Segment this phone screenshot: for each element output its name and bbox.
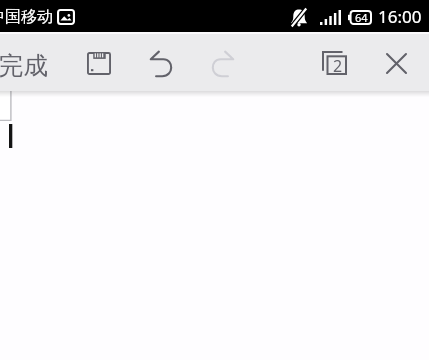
button[interactable]: Redo: [205, 44, 243, 82]
button[interactable]: Close: [377, 44, 415, 82]
staticText: 64: [355, 10, 368, 25]
button[interactable]: Undo: [141, 44, 179, 82]
button[interactable]: 完成: [0, 50, 51, 81]
button[interactable]: Tabs: [315, 44, 353, 82]
staticText: 2: [333, 55, 343, 77]
button[interactable]: Save: [80, 44, 118, 82]
staticText: 16:00: [378, 5, 422, 28]
staticText: 中国移动: [0, 7, 53, 27]
